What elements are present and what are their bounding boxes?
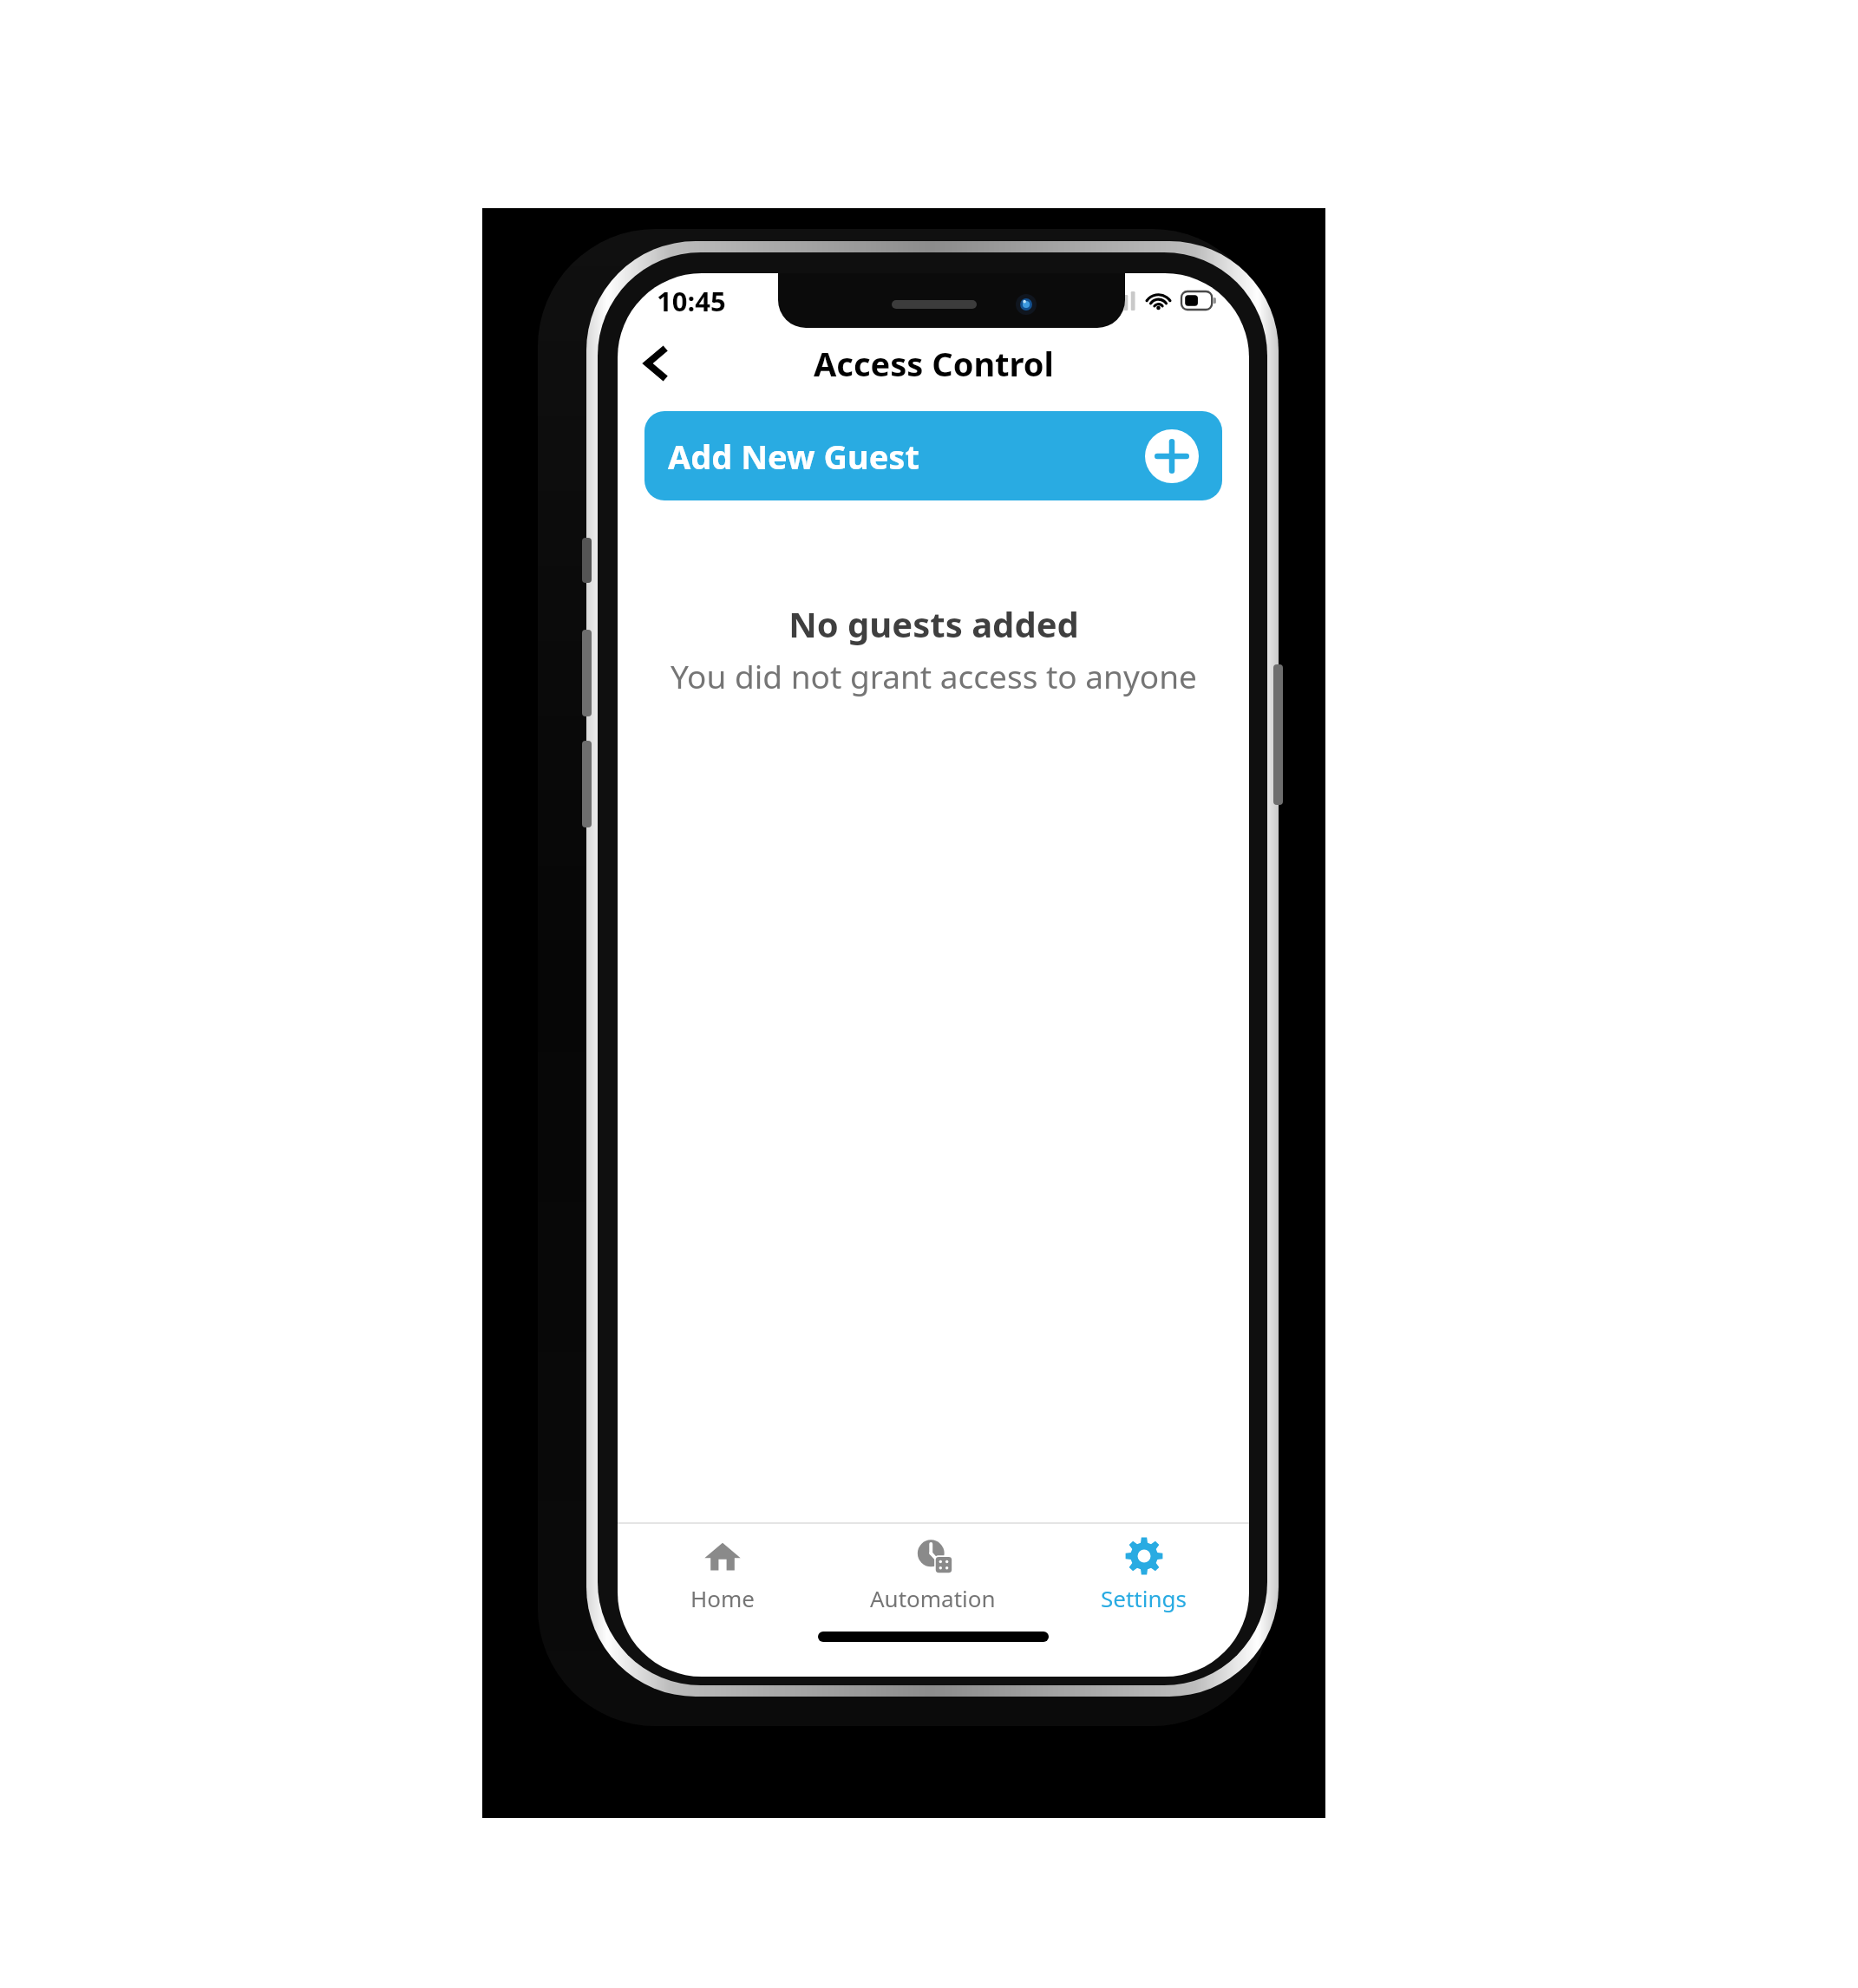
staticText: You did not grant access to anyone (671, 654, 1197, 697)
button[interactable]: Add New Guest (644, 411, 1222, 500)
staticText: Automation (870, 1583, 996, 1613)
button[interactable]: Home (618, 1524, 828, 1625)
staticText: Home (690, 1583, 755, 1613)
staticText: Access Control (814, 341, 1054, 386)
staticText: No guests added (788, 600, 1079, 647)
staticText: 10:45 (657, 283, 726, 319)
button[interactable]: Back (625, 332, 687, 395)
button[interactable]: Automation (828, 1524, 1038, 1625)
button[interactable]: Settings (1038, 1524, 1249, 1625)
staticText: Add New Guest (668, 434, 919, 479)
staticText: Settings (1101, 1583, 1187, 1613)
